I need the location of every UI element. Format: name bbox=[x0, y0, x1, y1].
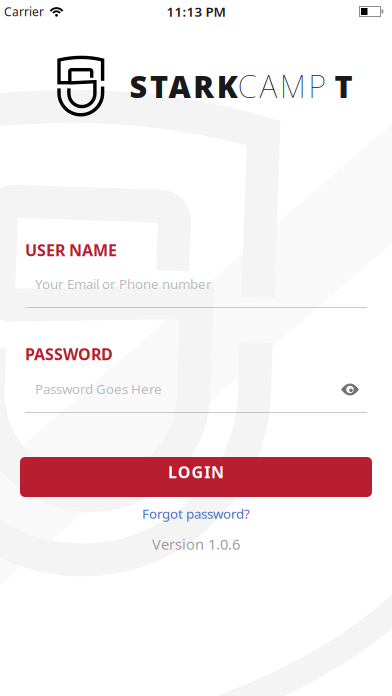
button[interactable]: Forgot password? bbox=[142, 505, 250, 522]
staticText: PASSWORD bbox=[25, 343, 113, 365]
staticText: 11:13 PM bbox=[166, 3, 225, 20]
staticText: Forgot password? bbox=[142, 505, 250, 522]
staticText: Password Goes Here bbox=[35, 380, 162, 398]
staticText: T bbox=[327, 66, 353, 106]
button[interactable]: Your Email or Phone number bbox=[25, 277, 367, 308]
button[interactable]: Show password bbox=[335, 377, 365, 401]
button[interactable]: Password Goes Here bbox=[25, 382, 367, 413]
button[interactable]: LOGIN bbox=[20, 457, 372, 497]
staticText: STARK bbox=[129, 66, 238, 106]
staticText: Carrier bbox=[4, 3, 44, 19]
staticText: CAMP bbox=[238, 66, 327, 106]
staticText: Your Email or Phone number bbox=[35, 275, 212, 293]
staticText: USER NAME bbox=[25, 239, 117, 261]
staticText: Version 1.0.6 bbox=[152, 534, 240, 554]
staticText: LOGIN bbox=[168, 461, 224, 483]
